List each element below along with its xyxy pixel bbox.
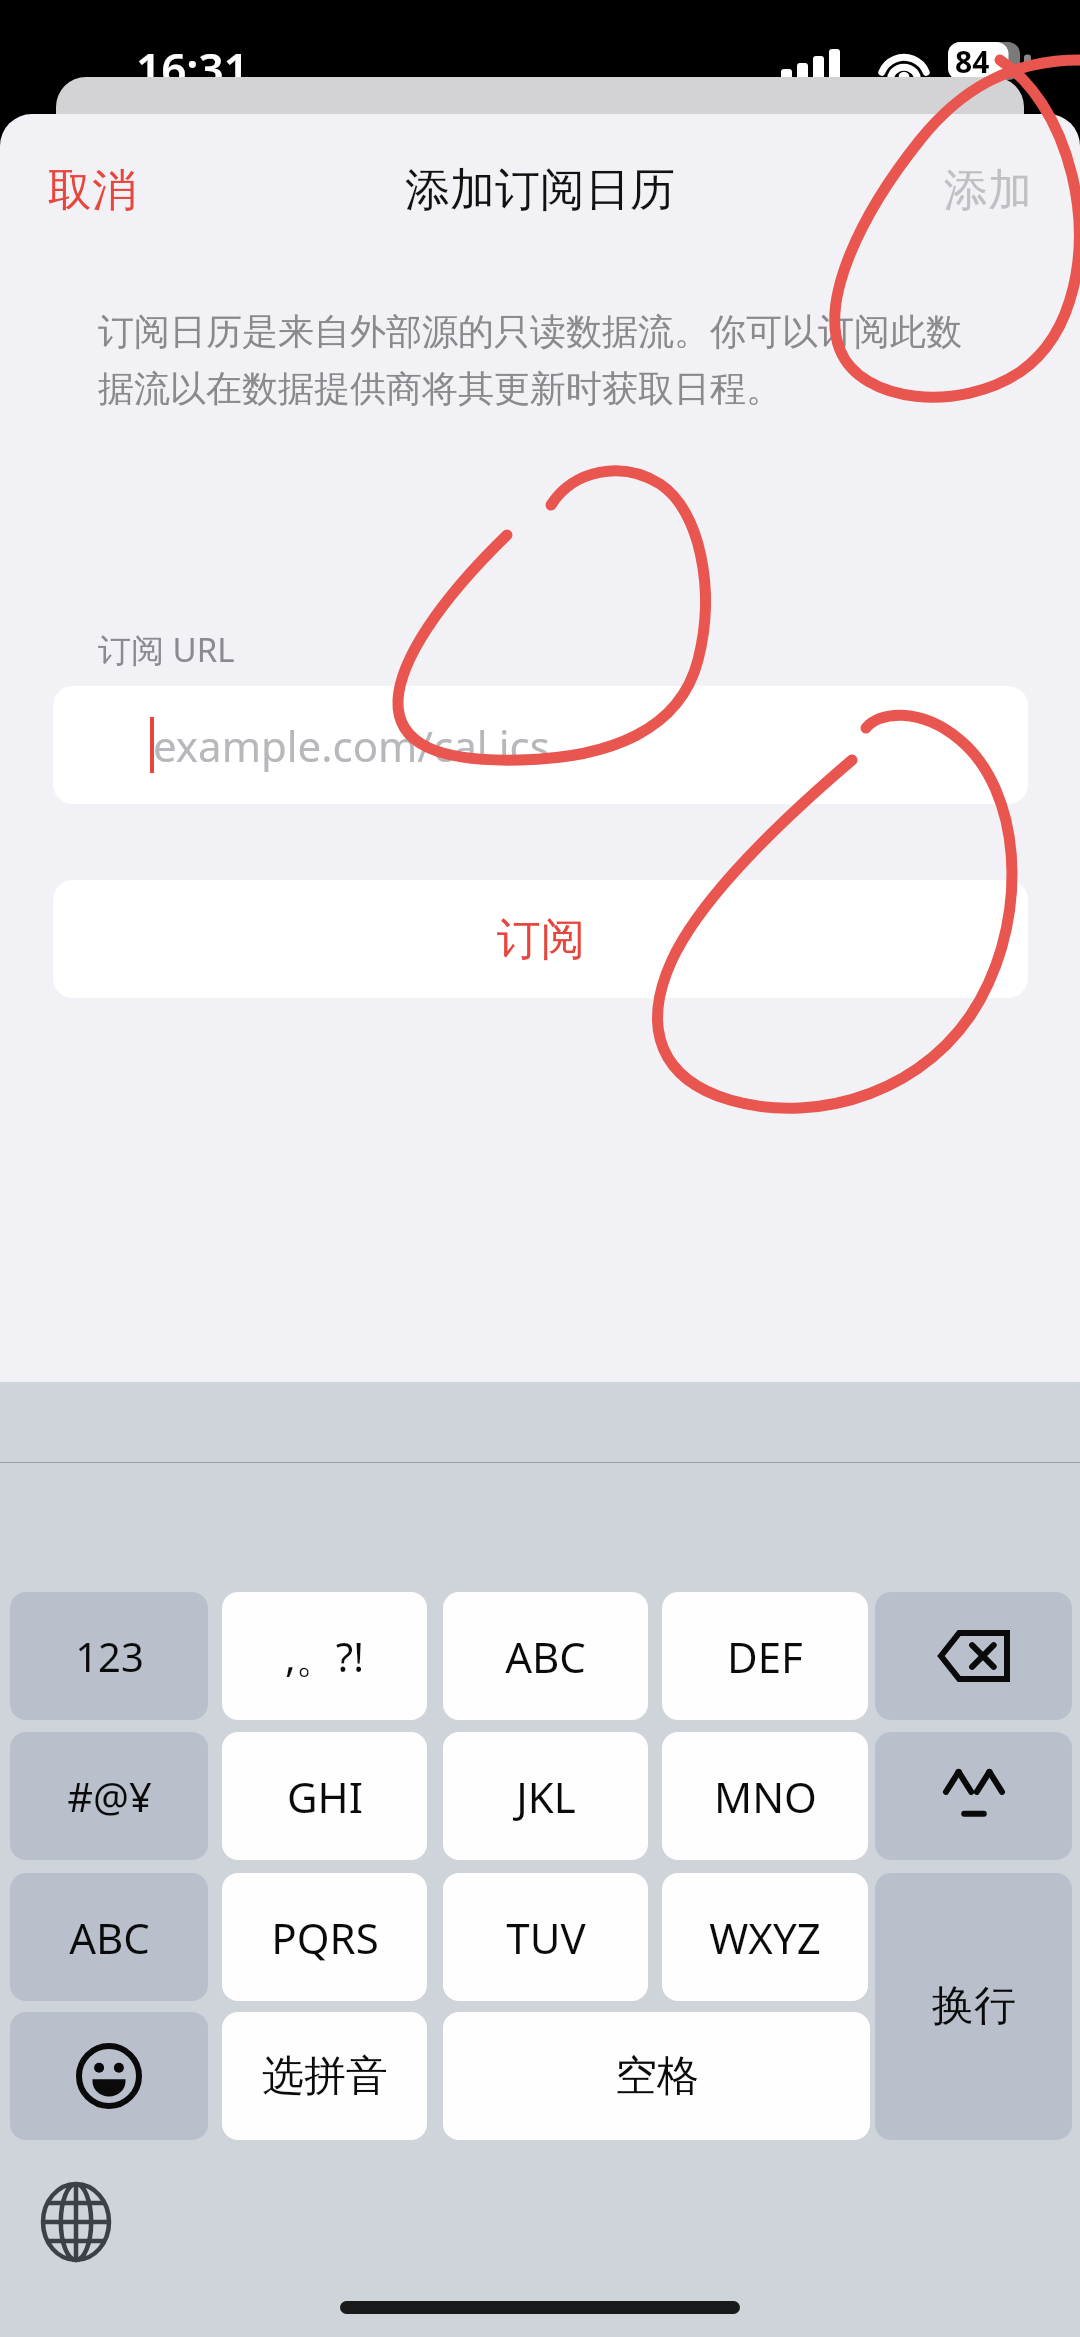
staticText: 添加订阅日历 [405,162,675,219]
button[interactable]: WXYZ [662,1873,868,2001]
staticText: DEF [727,1628,803,1685]
button[interactable]: 订阅 [53,880,1028,998]
staticText: 订阅 [497,912,585,967]
staticText: 84 [955,41,990,79]
button[interactable]: Emoji [10,2012,208,2140]
button[interactable]: Shift [875,1732,1072,1860]
button[interactable]: JKL [443,1732,648,1860]
staticText: 订阅日历是来自外部源的只读数据流。你可以订阅此数据流以在数据提供商将其更新时获取… [98,309,988,411]
button[interactable]: ABC [443,1592,648,1720]
staticText: GHI [287,1768,363,1825]
button[interactable]: 选拼音 [222,2012,427,2140]
staticText: #@¥ [67,1769,152,1823]
button[interactable]: DEF [662,1592,868,1720]
button[interactable]: example.com/cal.ics [53,686,1028,804]
button[interactable]: 123 [10,1592,208,1720]
staticText: TUV [506,1909,586,1966]
staticText: JKL [516,1768,576,1825]
button[interactable]: 空格 [443,2012,870,2140]
staticText: 换行 [932,1980,1016,2033]
staticText: 空格 [615,2050,699,2103]
staticText: ,。?! [285,1629,364,1684]
staticText: 添加 [944,163,1032,218]
button[interactable]: TUV [443,1873,648,2001]
button[interactable]: 换行 [875,1873,1072,2140]
staticText: PQRS [271,1909,379,1966]
button[interactable]: Delete [875,1592,1072,1720]
staticText: 取消 [48,163,136,218]
button[interactable]: GHI [222,1732,427,1860]
button[interactable]: #@¥ [10,1732,208,1860]
staticText: ABC [69,1909,150,1966]
staticText: 选拼音 [262,2050,388,2103]
staticText: 订阅 URL [98,627,235,672]
staticText: MNO [714,1768,817,1825]
button[interactable]: 添加 [916,149,1060,232]
button[interactable]: MNO [662,1732,868,1860]
staticText: example.com/cal.ics [153,717,550,774]
button[interactable]: ABC [10,1873,208,2001]
button[interactable]: PQRS [222,1873,427,2001]
button[interactable]: ,。?! [222,1592,427,1720]
button[interactable]: Switch keyboard language [26,2172,126,2272]
button[interactable]: 取消 [20,149,164,232]
staticText: 16:31 [136,38,249,98]
staticText: WXYZ [709,1909,821,1966]
staticText: 123 [75,1629,144,1683]
staticText: ABC [505,1628,586,1685]
